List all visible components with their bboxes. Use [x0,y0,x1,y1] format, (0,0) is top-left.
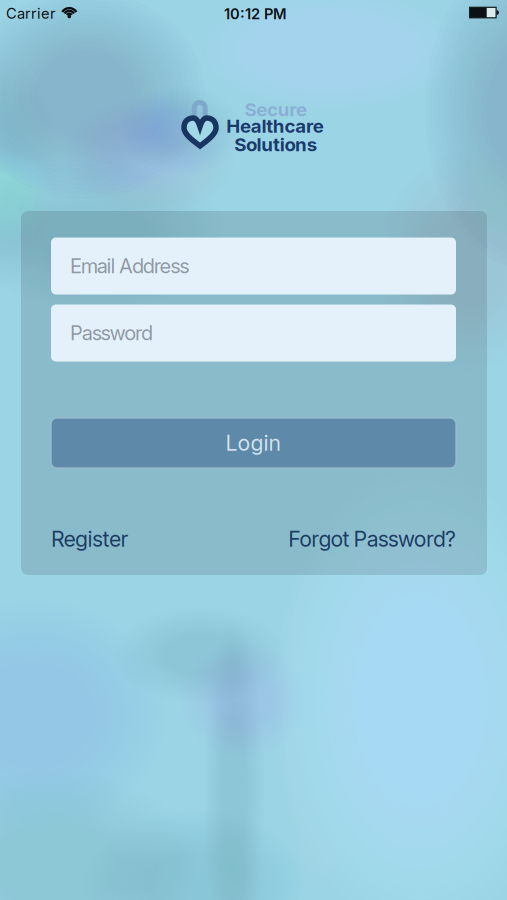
button[interactable]: Register [51,526,128,552]
staticText: Login [225,430,281,456]
staticText: Password [70,321,153,345]
staticText: Solutions [234,133,317,155]
button[interactable]: Password [51,304,456,361]
staticText: Forgot Password? [288,526,456,552]
staticText: Email Address [70,254,189,278]
button[interactable]: Login [51,418,456,468]
button[interactable]: Forgot Password? [288,526,456,552]
staticText: Healthcare [226,115,324,137]
button[interactable]: Email Address [51,237,456,294]
staticText: Carrier [6,5,56,22]
staticText: 10:12 PM [224,5,287,22]
staticText: Secure [244,98,307,120]
staticText: Register [51,526,128,552]
